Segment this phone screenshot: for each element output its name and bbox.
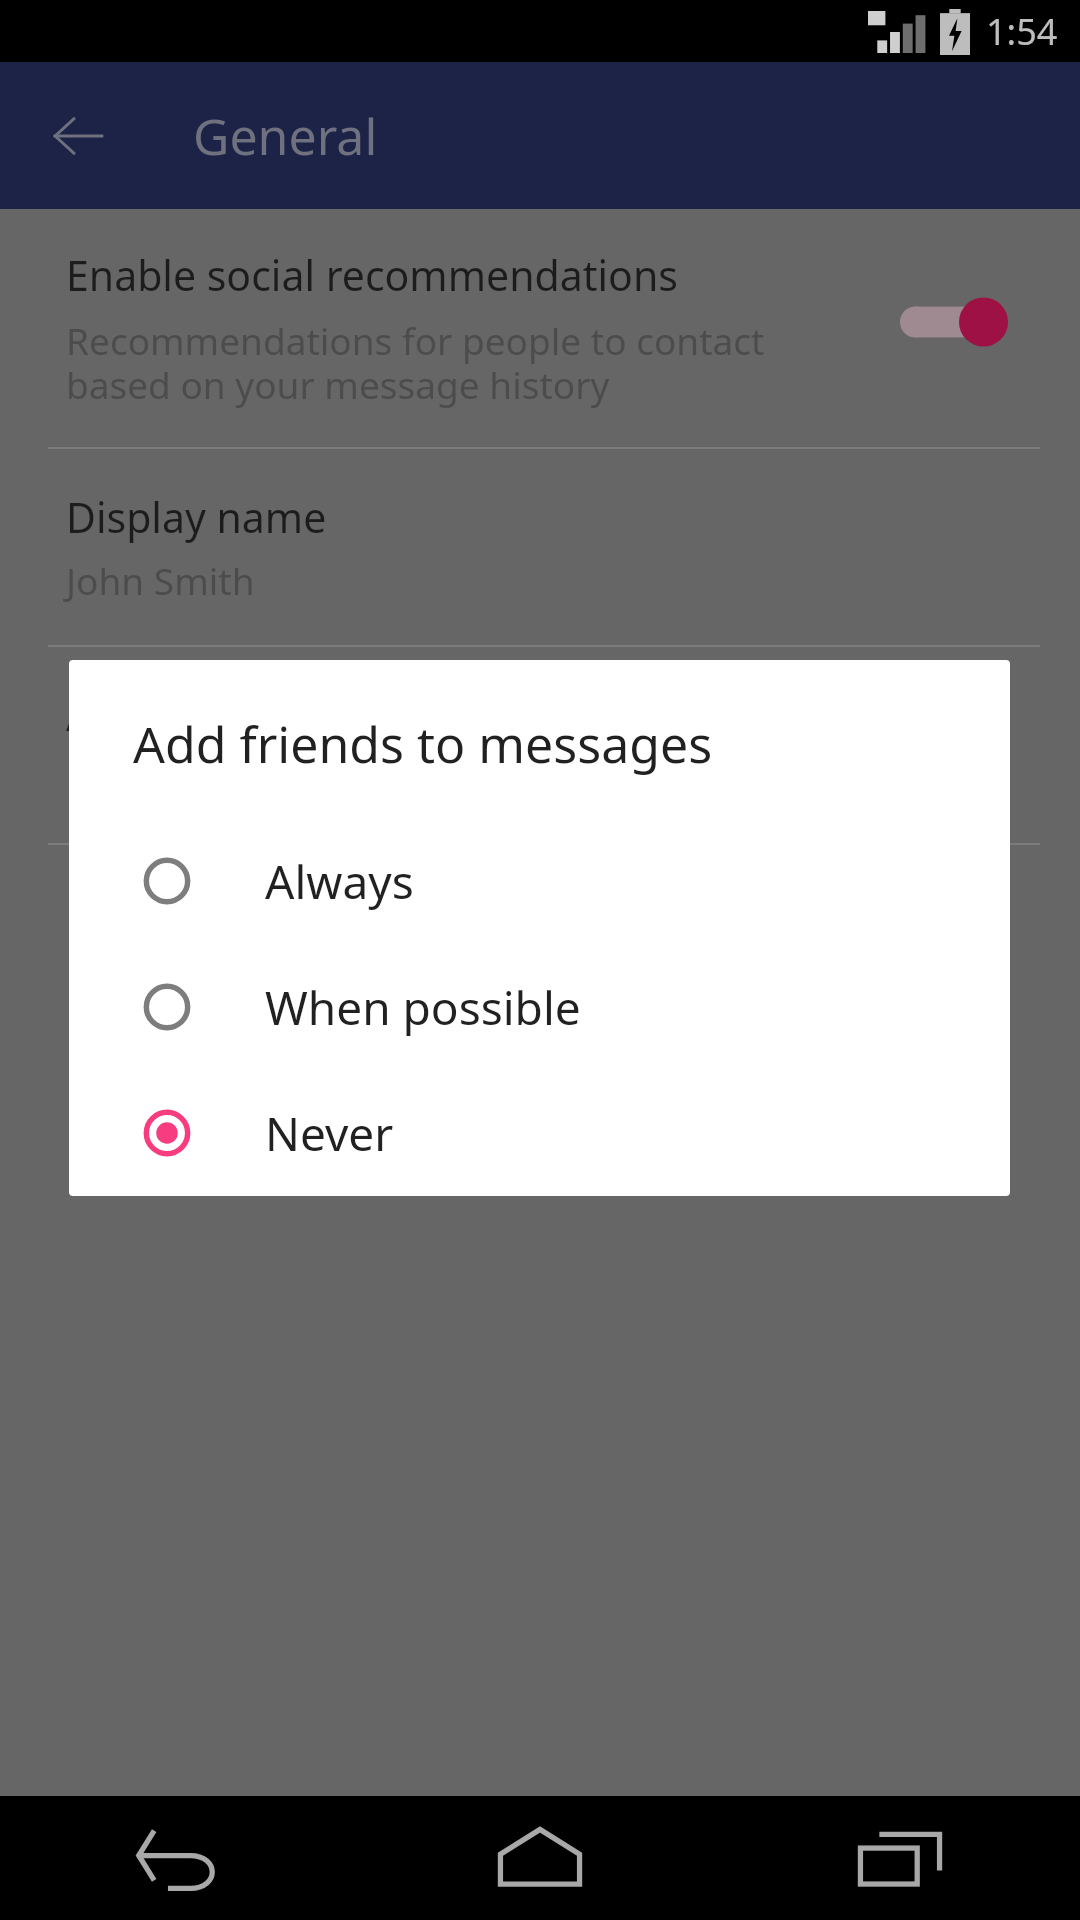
button[interactable]: Always — [69, 818, 1010, 944]
button[interactable]: Recent apps — [830, 1803, 970, 1913]
button[interactable]: Back — [110, 1803, 250, 1913]
staticText: John Smith — [66, 555, 255, 605]
staticText: Enable social recommendations — [66, 247, 678, 303]
staticText: When possible — [265, 976, 581, 1039]
staticText: Recommendations for people to contact ba… — [66, 315, 800, 409]
staticText: Always — [265, 850, 414, 913]
button[interactable]: Enable social recommendations toggle — [894, 277, 1014, 367]
staticText: Add friends to messages — [133, 710, 713, 778]
button[interactable]: Display name — [0, 449, 1080, 645]
staticText: 1:54 — [986, 7, 1058, 56]
button[interactable]: Add friends to messages — [0, 647, 1080, 843]
staticText: Never — [265, 1102, 394, 1165]
button[interactable]: When possible — [69, 944, 1010, 1070]
button[interactable]: Home — [470, 1803, 610, 1913]
button[interactable]: Back — [30, 88, 126, 184]
button[interactable]: Never — [69, 1070, 1010, 1196]
button[interactable]: Enable social recommendations — [0, 209, 1080, 447]
staticText: Add friends to messages — [66, 687, 541, 743]
staticText: Display name — [66, 489, 327, 545]
staticText: General — [193, 102, 378, 170]
staticText: Never — [66, 753, 170, 803]
